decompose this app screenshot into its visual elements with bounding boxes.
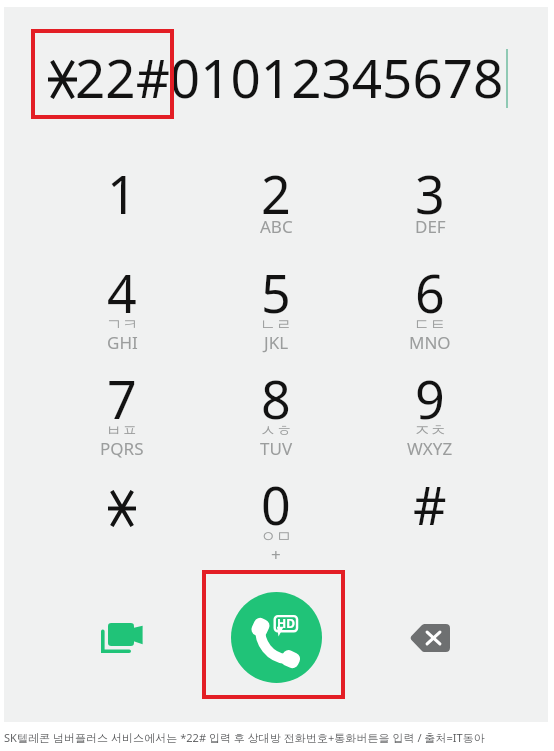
staticText: 3 <box>415 158 445 229</box>
staticText: DEF <box>415 215 446 238</box>
button[interactable]: Backspace <box>384 592 476 684</box>
staticText: SK텔레콘 넘버플러스 서비스에서는 *22# 입력 후 상대방 전화번호+통화… <box>4 730 485 745</box>
staticText: ABC <box>260 215 293 238</box>
staticText: GHI <box>107 331 138 354</box>
staticText: WXYZ <box>407 437 453 460</box>
button[interactable]: 0 <box>204 452 348 548</box>
staticText: ㅂㅍ <box>106 421 138 441</box>
staticText: PQRS <box>100 437 144 460</box>
button[interactable]: 8 <box>204 346 348 442</box>
staticText: 5 <box>261 257 291 328</box>
staticText: TUV <box>260 437 293 460</box>
staticText: ㅇㅁ <box>260 527 292 547</box>
staticText: JKL <box>264 331 289 354</box>
staticText: ㅅㅎ <box>260 421 292 441</box>
staticText: MNO <box>409 331 451 354</box>
button[interactable]: 4 <box>50 240 194 336</box>
staticText: 6 <box>415 257 445 328</box>
button[interactable]: # <box>358 452 502 548</box>
button[interactable]: 3 <box>358 141 502 237</box>
button[interactable]: 1 <box>50 141 194 237</box>
staticText: # <box>413 469 447 540</box>
staticText: 7 <box>107 363 137 434</box>
button[interactable]: 2 <box>204 141 348 237</box>
button[interactable]: 5 <box>204 240 348 336</box>
staticText: HD <box>277 615 295 631</box>
staticText: + <box>271 543 281 566</box>
button[interactable] <box>50 452 194 548</box>
staticText: 0 <box>261 469 291 540</box>
staticText: 8 <box>261 363 291 434</box>
button[interactable]: Call <box>230 591 322 683</box>
staticText: 2 <box>261 158 291 229</box>
staticText: 22#01012345678 <box>75 41 504 113</box>
button[interactable]: Video call <box>76 592 168 684</box>
staticText: 4 <box>107 257 137 328</box>
staticText: ㄴㄹ <box>260 315 292 335</box>
staticText: ㅈㅊ <box>414 421 446 441</box>
staticText: 9 <box>415 363 445 434</box>
button[interactable]: 6 <box>358 240 502 336</box>
button[interactable]: 7 <box>50 346 194 442</box>
button[interactable]: 9 <box>358 346 502 442</box>
staticText: 1 <box>107 158 137 229</box>
staticText: ㄱㅋ <box>106 315 138 335</box>
staticText: ㄷㅌ <box>414 315 446 335</box>
